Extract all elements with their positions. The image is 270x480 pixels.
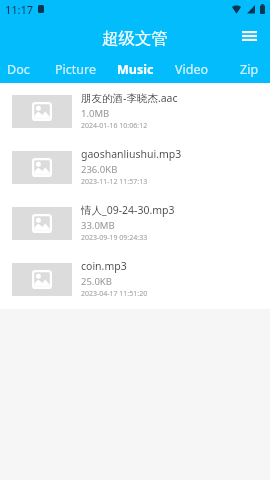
staticText: gaoshanliushui.mp3 bbox=[81, 147, 182, 161]
staticText: 2023-04-17 11:51:20 bbox=[81, 289, 148, 299]
staticText: 朋友的酒-李晓杰.aac bbox=[81, 91, 178, 105]
staticText: 33.0MB bbox=[81, 219, 115, 232]
staticText: 2023-09-19 09:24:33 bbox=[81, 233, 148, 243]
staticText: 2023-11-12 11:57:13 bbox=[81, 177, 148, 187]
button[interactable]: Menu bbox=[236, 23, 262, 49]
staticText: 1.0MB bbox=[81, 107, 110, 120]
staticText: Picture bbox=[55, 61, 96, 78]
staticText: 情人_09-24-30.mp3 bbox=[81, 203, 175, 217]
staticText: coin.mp3 bbox=[81, 259, 127, 273]
staticText: 超级文管 bbox=[102, 28, 168, 49]
button[interactable]: Zip bbox=[228, 55, 270, 83]
staticText: 11:17 bbox=[5, 2, 34, 17]
button[interactable]: Video bbox=[156, 55, 228, 83]
staticText: Doc bbox=[7, 61, 30, 78]
button[interactable]: coin.mp3 bbox=[0, 251, 270, 307]
staticText: Music bbox=[117, 61, 154, 78]
button[interactable]: 情人_09-24-30.mp3 bbox=[0, 195, 270, 251]
button[interactable]: Doc bbox=[0, 55, 36, 83]
staticText: 2024-01-16 10:06:12 bbox=[81, 121, 148, 131]
button[interactable]: 朋友的酒-李晓杰.aac bbox=[0, 83, 270, 139]
button[interactable]: Music bbox=[114, 55, 156, 83]
staticText: 236.0KB bbox=[81, 163, 118, 176]
staticText: 25.0KB bbox=[81, 275, 112, 288]
button[interactable]: Picture bbox=[36, 55, 114, 83]
staticText: Zip bbox=[240, 61, 259, 78]
button[interactable]: gaoshanliushui.mp3 bbox=[0, 139, 270, 195]
staticText: Video bbox=[175, 61, 209, 78]
